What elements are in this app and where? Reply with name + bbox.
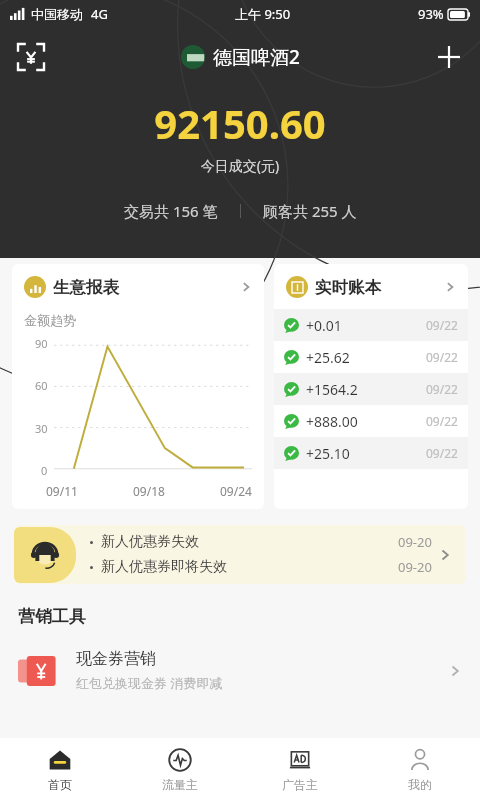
staticText: 09/22	[426, 445, 458, 461]
staticText: 流量主	[162, 777, 198, 792]
button[interactable]: Scan to pay	[14, 40, 48, 74]
staticText: 09/24	[220, 483, 252, 499]
staticText: 今日成交(元)	[0, 156, 480, 175]
staticText: 09/18	[133, 483, 165, 499]
staticText: 德国啤酒2	[213, 44, 300, 70]
staticText: 交易共 156 笔	[124, 201, 218, 221]
staticText: 中国移动	[31, 6, 83, 22]
staticText: +888.00	[306, 412, 358, 431]
staticText: +1564.2	[306, 380, 358, 399]
button[interactable]: 现金券营销	[0, 645, 480, 696]
staticText: 红包兑换现金券 消费即减	[76, 674, 223, 692]
staticText: 90	[35, 336, 48, 351]
button[interactable]: 生意报表	[12, 264, 264, 509]
staticText: 09/22	[426, 349, 458, 365]
staticText: 首页	[48, 777, 72, 792]
button[interactable]: 首页	[0, 738, 120, 800]
staticText: 09/11	[46, 483, 78, 499]
button[interactable]: 德国啤酒2	[181, 44, 300, 70]
button[interactable]: 我的	[360, 738, 480, 800]
staticText: 09/22	[426, 381, 458, 397]
button[interactable]: Add	[432, 40, 466, 74]
staticText: 新人优惠券失效	[101, 533, 199, 551]
staticText: 顾客共 255 人	[263, 201, 357, 221]
staticText: 营销工具	[18, 606, 86, 627]
staticText: 92150.60	[0, 96, 480, 150]
staticText: 30	[35, 421, 48, 436]
staticText: 60	[35, 378, 48, 393]
button[interactable]: 流量主	[120, 738, 240, 800]
staticText: +25.10	[306, 444, 350, 463]
staticText: 现金券营销	[76, 649, 156, 669]
staticText: 我的	[408, 777, 432, 792]
staticText: 广告主	[282, 777, 318, 792]
staticText: 0	[41, 463, 48, 478]
staticText: 09-20	[398, 558, 432, 576]
button[interactable]: 实时账本	[274, 264, 468, 509]
staticText: 新人优惠券即将失效	[101, 558, 227, 576]
staticText: 金额趋势	[24, 312, 76, 328]
staticText: 实时账本	[315, 277, 381, 298]
staticText: 上午 9:50	[235, 5, 291, 23]
staticText: +0.01	[306, 316, 342, 335]
staticText: 09-20	[398, 533, 432, 551]
button[interactable]: 新人优惠券失效	[14, 525, 466, 584]
staticText: +25.62	[306, 348, 350, 367]
staticText: 09/22	[426, 317, 458, 333]
staticText: 生意报表	[53, 277, 119, 298]
staticText: 4G	[91, 5, 108, 23]
button[interactable]: 广告主	[240, 738, 360, 800]
staticText: 93%	[418, 5, 444, 23]
staticText: 09/22	[426, 413, 458, 429]
